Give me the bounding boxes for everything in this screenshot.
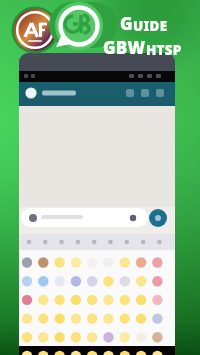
staticText: HTSP bbox=[146, 41, 182, 59]
staticText: UIDE bbox=[133, 17, 168, 35]
staticText: G bbox=[120, 12, 133, 35]
staticText: GBW bbox=[103, 36, 146, 59]
